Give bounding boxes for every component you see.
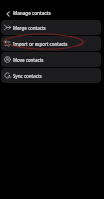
staticText: Merge contacts bbox=[13, 25, 46, 31]
staticText: Import or export contacts bbox=[13, 41, 68, 47]
button[interactable]: Move contacts bbox=[1, 52, 101, 67]
staticText: Move contacts bbox=[13, 57, 44, 63]
button[interactable]: Sync contacts bbox=[1, 68, 101, 83]
button[interactable]: Import or export contacts bbox=[1, 36, 101, 51]
button[interactable]: Back bbox=[2, 8, 13, 19]
staticText: Sync contacts bbox=[13, 73, 42, 79]
button[interactable]: Merge contacts bbox=[1, 20, 101, 35]
staticText: Manage contacts bbox=[13, 10, 51, 16]
